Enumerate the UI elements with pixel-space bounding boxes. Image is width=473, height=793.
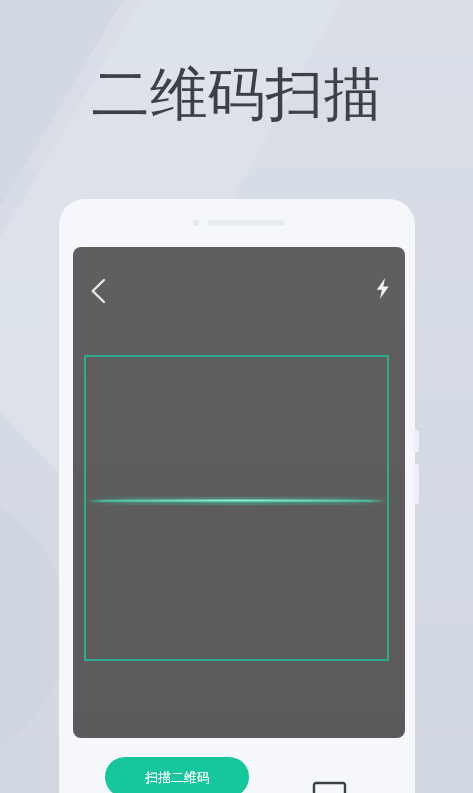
button[interactable]: Back [79,272,117,310]
button[interactable]: Scan from album [307,777,351,793]
button[interactable]: Flash [363,269,401,307]
button[interactable]: 扫描二维码 [105,757,249,793]
staticText: 二维码扫描 [70,58,403,138]
staticText: 扫描二维码 [145,769,210,785]
